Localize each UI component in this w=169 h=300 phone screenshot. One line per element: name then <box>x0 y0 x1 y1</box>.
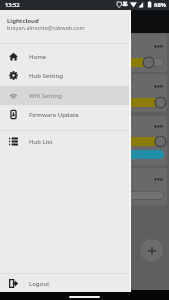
button[interactable]: Home <box>0 47 131 66</box>
staticText: brayan.almonte@rabweb.com <box>7 24 85 31</box>
staticText: Wifi Setting <box>29 92 63 100</box>
other: More options <box>154 45 162 48</box>
staticText: 68% <box>154 1 167 9</box>
button[interactable]: More options <box>2 34 167 72</box>
staticText: Firmware Update <box>29 111 79 119</box>
button[interactable]: Firmware Update <box>0 105 131 124</box>
button[interactable]: Logout <box>0 274 131 293</box>
button[interactable]: Hub List <box>0 132 131 151</box>
other: More options <box>154 178 162 181</box>
other: More options <box>154 85 162 88</box>
button[interactable]: Wifi Setting <box>0 86 131 105</box>
button[interactable]: More options <box>2 116 167 165</box>
staticText: Home <box>29 53 47 61</box>
button[interactable]: Add <box>140 239 163 262</box>
staticText: Logout <box>29 280 50 288</box>
staticText: Lightcloud <box>7 17 39 25</box>
button[interactable]: Hub Setting <box>0 66 131 85</box>
staticText: Hub List <box>29 138 53 146</box>
button[interactable]: More options <box>2 74 167 112</box>
staticText: 13:52 <box>5 1 20 9</box>
button[interactable]: More options <box>2 168 167 205</box>
other: More options <box>154 125 162 128</box>
staticText: Hub Setting <box>29 72 63 80</box>
